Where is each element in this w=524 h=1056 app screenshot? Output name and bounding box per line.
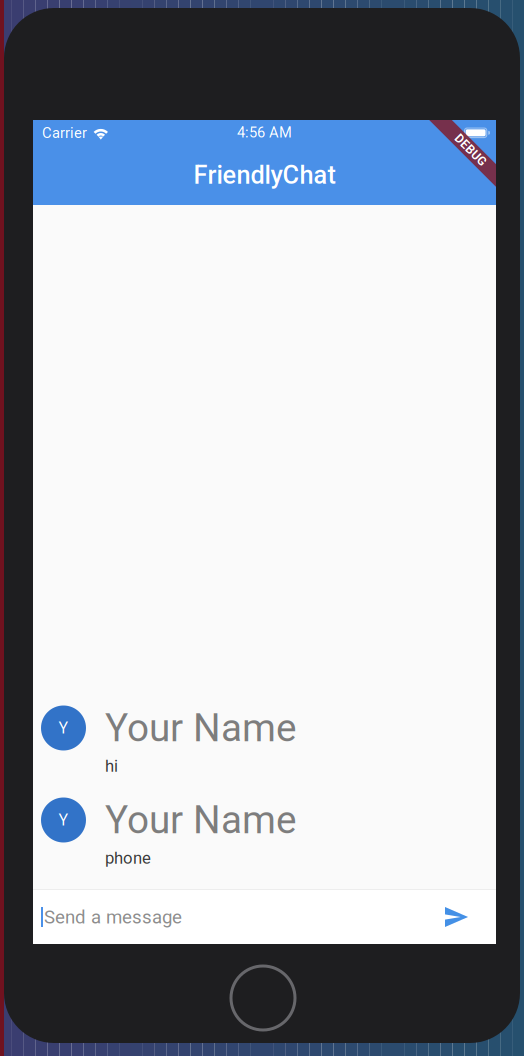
button[interactable]: Send a message — [33, 890, 496, 944]
staticText: phone — [105, 848, 151, 868]
staticText: Carrier — [42, 124, 87, 142]
staticText: Y — [58, 719, 68, 737]
button[interactable]: Y — [33, 765, 496, 875]
staticText: Y — [58, 811, 68, 829]
staticText: FriendlyChat — [193, 160, 335, 190]
staticText: 4:56 AM — [237, 124, 292, 141]
staticText: hi — [105, 756, 118, 776]
staticText: Your Name — [105, 705, 297, 751]
staticText: DEBUG — [451, 143, 490, 157]
button[interactable]: Y — [33, 673, 496, 783]
staticText: Send a message — [44, 906, 182, 928]
staticText: Your Name — [105, 797, 297, 843]
